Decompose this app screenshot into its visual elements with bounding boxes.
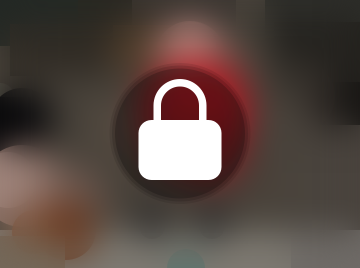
button[interactable]: Locked content	[0, 0, 360, 268]
